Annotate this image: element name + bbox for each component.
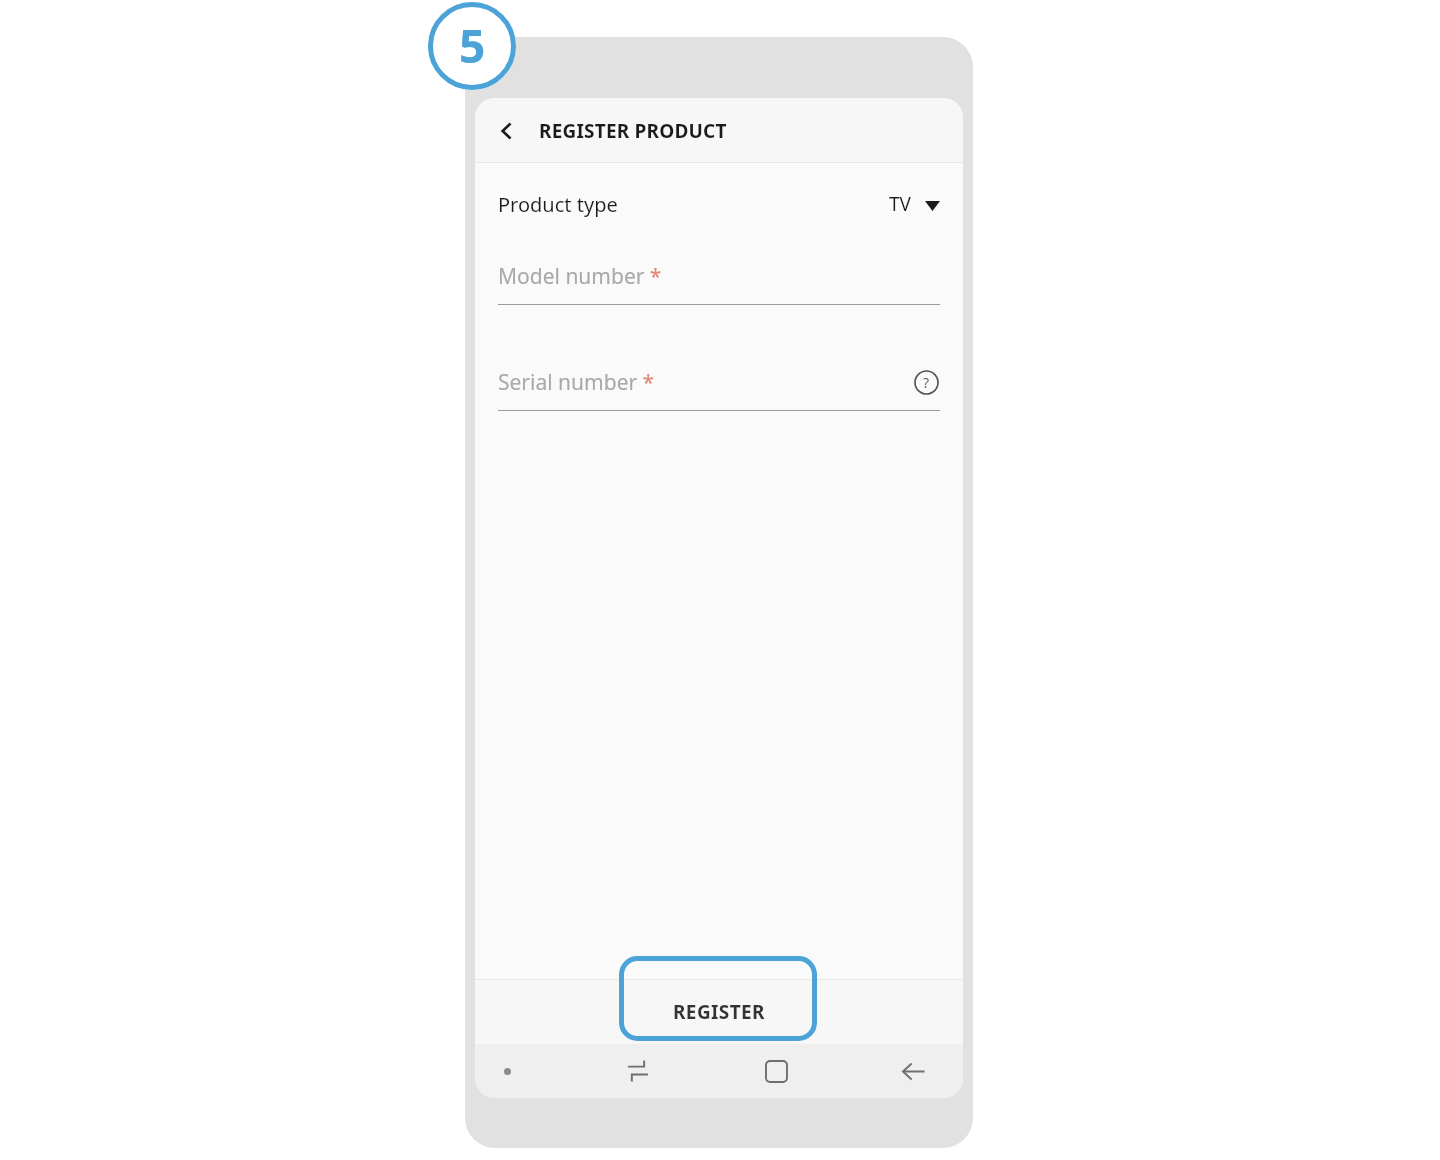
staticText: Serial number * [498,368,655,397]
staticText: REGISTER PRODUCT [539,118,727,144]
button[interactable]: REGISTER [644,992,794,1032]
staticText: Model number * [498,262,662,291]
button[interactable]: Help [912,368,940,396]
staticText: ? [923,373,930,392]
button[interactable]: Product type [498,163,940,245]
button[interactable]: Back [889,1047,937,1095]
staticText: Product type [498,191,618,218]
staticText: TV [889,191,911,217]
button[interactable]: Model number * [498,245,940,305]
button[interactable]: Home [752,1047,800,1095]
button[interactable]: Recents [614,1047,662,1095]
button[interactable]: Back [485,109,529,153]
button[interactable]: Serial number * [498,351,940,411]
staticText: REGISTER [673,999,765,1025]
staticText: 5 [459,14,486,77]
